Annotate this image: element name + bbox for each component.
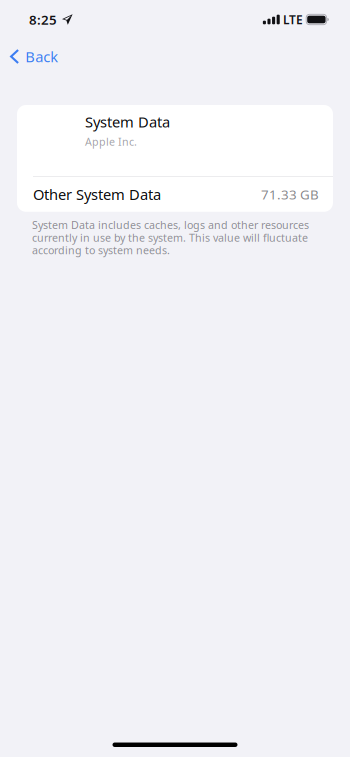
staticText: System Data includes caches, logs and ot… [32,218,309,232]
button[interactable]: System Data [17,105,333,176]
staticText: currently in use by the system. This val… [32,230,308,245]
staticText: Back [25,47,58,66]
button[interactable]: Back [0,39,70,74]
staticText: Other System Data [33,185,161,204]
button[interactable]: Other System Data [17,177,333,212]
staticText: 71.33 GB [261,185,319,203]
staticText: LTE [283,11,303,27]
staticText: Apple Inc. [85,134,137,149]
staticText: System Data [85,112,170,131]
staticText: 8:25 [29,11,57,28]
staticText: according to system needs. [32,243,170,257]
